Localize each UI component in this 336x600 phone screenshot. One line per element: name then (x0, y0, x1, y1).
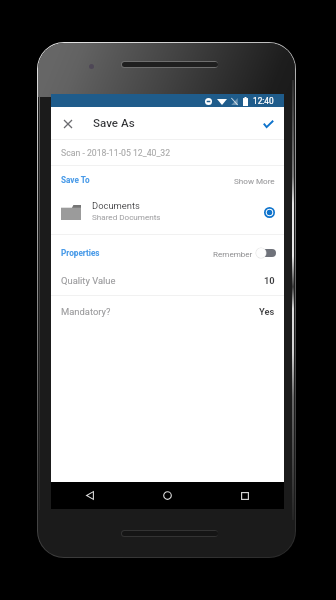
staticText: 12:40 (253, 96, 274, 106)
staticText: Quality Value (61, 275, 116, 286)
staticText: Save As (93, 116, 135, 130)
staticText: 10 (264, 275, 275, 286)
button[interactable]: Close (55, 111, 80, 136)
button[interactable]: Documents (51, 190, 284, 234)
button[interactable]: Remember (213, 247, 275, 259)
staticText: Remember (213, 249, 253, 258)
button[interactable]: Recents (206, 482, 284, 509)
button[interactable]: Quality Value (51, 265, 284, 295)
staticText: Yes (259, 306, 275, 317)
staticText: Documents (92, 200, 140, 211)
button[interactable]: Home (128, 482, 206, 509)
button[interactable]: Back (51, 482, 128, 509)
staticText: Properties (61, 248, 100, 258)
button[interactable]: Show More (234, 176, 275, 185)
staticText: Show More (234, 176, 275, 185)
staticText: Shared Documents (92, 212, 161, 221)
button[interactable]: Confirm (256, 111, 281, 136)
staticText: Scan - 2018-11-05 12_40_32 (61, 148, 171, 158)
staticText: Mandatory? (61, 306, 111, 317)
staticText: Save To (61, 175, 90, 185)
button[interactable]: Scan - 2018-11-05 12_40_32 (51, 140, 284, 165)
button[interactable]: Mandatory? (51, 296, 284, 326)
